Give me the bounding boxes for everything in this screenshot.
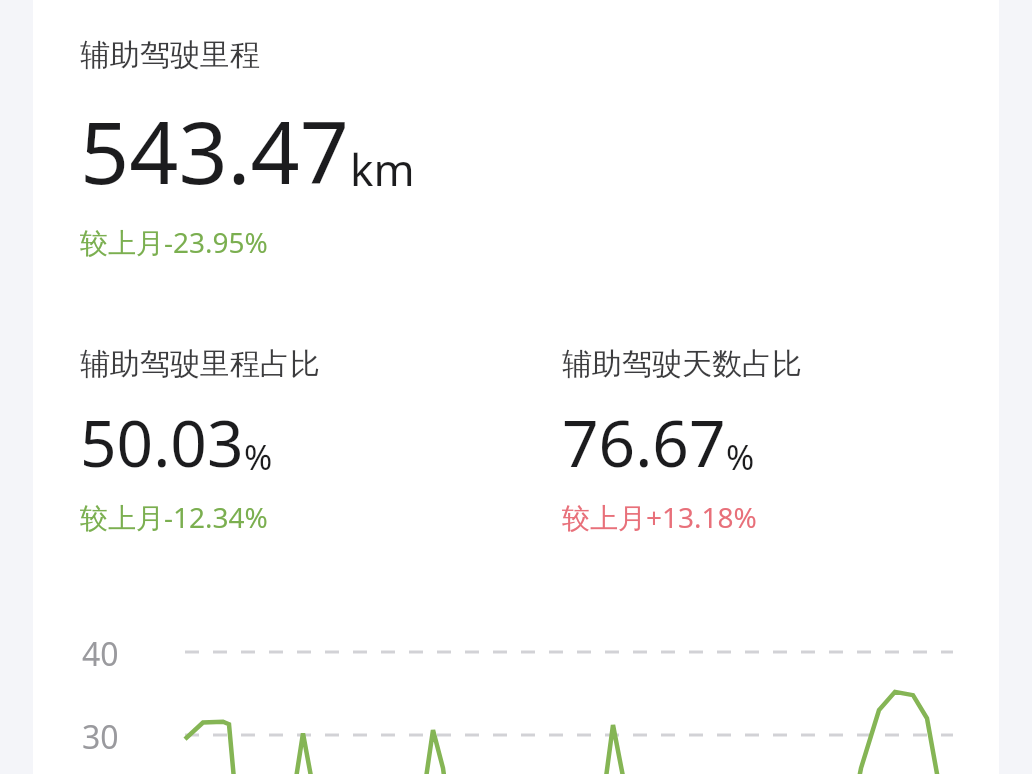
button[interactable]: Assisted driving chart — [33, 600, 999, 774]
staticText: 543.47 — [80, 92, 350, 209]
staticText: 较上月-23.95% — [80, 223, 268, 261]
staticText: % — [244, 434, 273, 480]
staticText: 较上月-12.34% — [80, 498, 268, 536]
staticText: 30 — [82, 715, 119, 759]
button[interactable]: 辅助驾驶里程占比 — [33, 345, 516, 536]
button[interactable]: 辅助驾驶天数占比 — [516, 345, 999, 536]
staticText: 辅助驾驶里程 — [80, 36, 260, 74]
staticText: km — [350, 139, 415, 199]
staticText: 较上月+13.18% — [562, 498, 757, 536]
staticText: 50.03 — [80, 399, 244, 486]
staticText: 辅助驾驶天数占比 — [562, 345, 802, 383]
staticText: % — [726, 434, 755, 480]
staticText: 40 — [82, 632, 119, 676]
button[interactable]: 辅助驾驶里程 — [80, 36, 580, 276]
staticText: 76.67 — [562, 399, 726, 486]
staticText: 辅助驾驶里程占比 — [80, 345, 320, 383]
